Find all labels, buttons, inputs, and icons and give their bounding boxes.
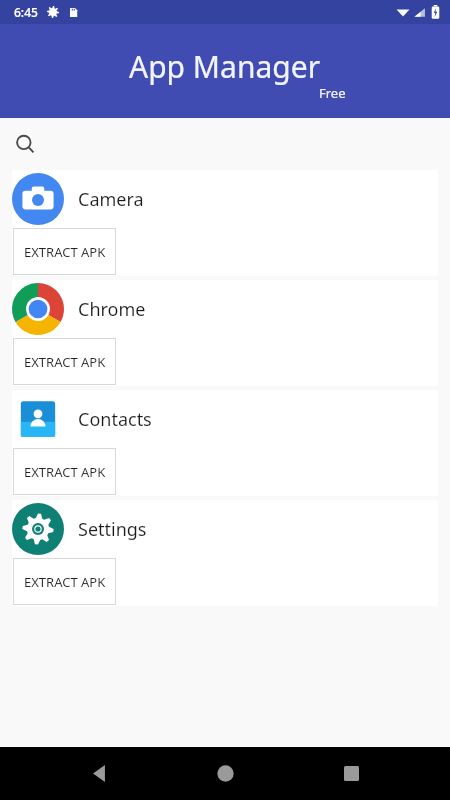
staticText: Settings xyxy=(78,517,147,542)
staticText: EXTRACT APK xyxy=(24,353,106,371)
button[interactable]: EXTRACT APK xyxy=(13,228,116,275)
button[interactable]: Back xyxy=(72,747,126,800)
staticText: Camera xyxy=(78,187,144,212)
staticText: Chrome xyxy=(78,297,146,322)
button[interactable]: Camera xyxy=(12,170,438,276)
staticText: EXTRACT APK xyxy=(24,463,106,481)
button[interactable]: Home xyxy=(198,747,252,800)
button[interactable]: Settings xyxy=(12,500,438,606)
button[interactable]: Search xyxy=(0,118,450,170)
staticText: EXTRACT APK xyxy=(24,243,106,261)
button[interactable]: Recent apps xyxy=(324,747,378,800)
button[interactable]: EXTRACT APK xyxy=(13,448,116,495)
staticText: EXTRACT APK xyxy=(24,573,106,591)
button[interactable]: Chrome xyxy=(12,280,438,386)
button[interactable]: EXTRACT APK xyxy=(13,558,116,605)
button[interactable]: Contacts xyxy=(12,390,438,496)
staticText: Contacts xyxy=(78,407,152,432)
staticText: App Manager xyxy=(129,46,321,87)
staticText: 6:45 xyxy=(14,4,38,20)
button[interactable]: EXTRACT APK xyxy=(13,338,116,385)
staticText: Free xyxy=(319,84,346,102)
